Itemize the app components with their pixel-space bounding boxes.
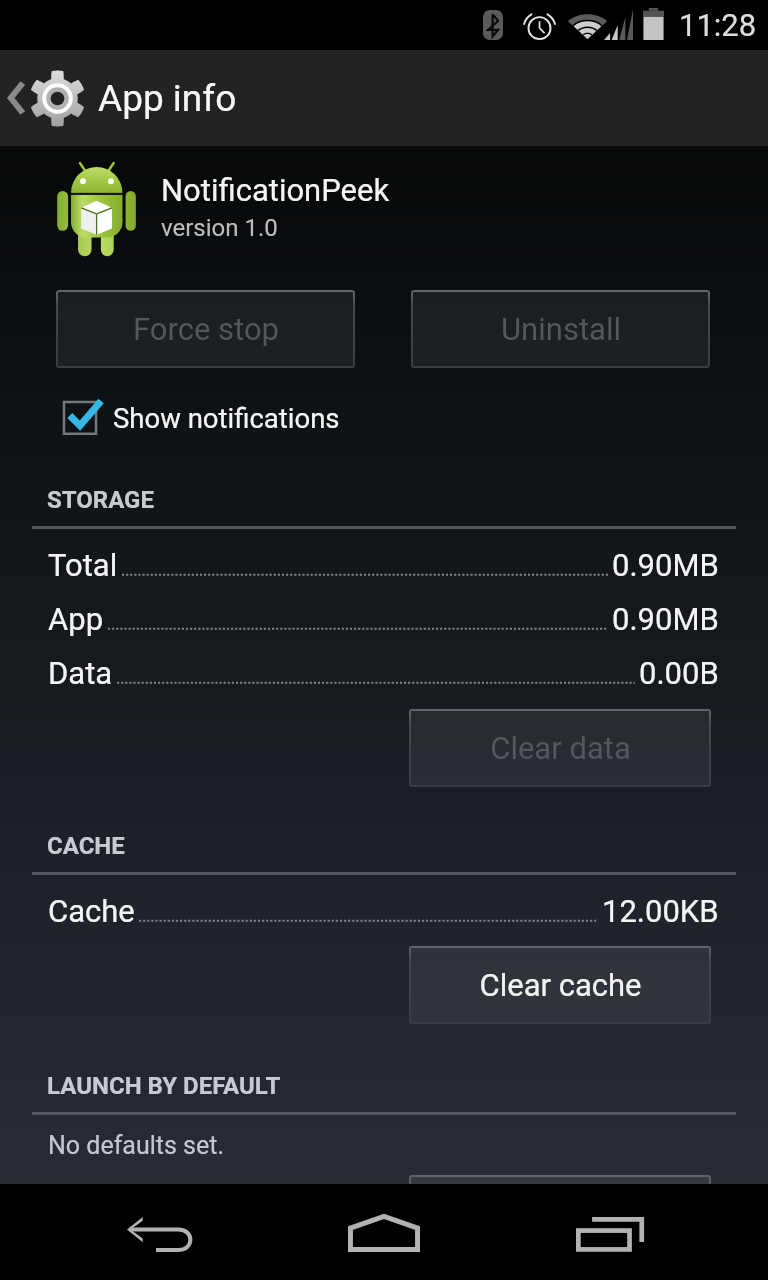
staticText: 0.00B <box>639 655 719 691</box>
staticText: No defaults set. <box>48 1131 225 1160</box>
button[interactable] <box>409 1175 711 1253</box>
button[interactable]: Force stop <box>56 290 355 368</box>
staticText: App info <box>98 77 237 120</box>
staticText: version 1.0 <box>161 214 278 242</box>
button[interactable]: App <box>0 592 768 646</box>
button[interactable]: Data <box>0 646 768 700</box>
staticText: Data <box>48 655 113 691</box>
button[interactable]: Uninstall <box>411 290 710 368</box>
staticText: CACHE <box>47 832 125 860</box>
staticText: Cache <box>48 893 135 929</box>
staticText: Clear data <box>490 730 631 766</box>
staticText: STORAGE <box>47 486 154 514</box>
button[interactable]: Clear data <box>409 709 711 787</box>
button[interactable]: App info, navigate up <box>0 50 768 146</box>
staticText: Force stop <box>133 311 279 347</box>
staticText: App <box>48 601 104 637</box>
button[interactable]: Back <box>48 1184 272 1280</box>
button[interactable]: Cache <box>0 884 768 938</box>
button[interactable]: Recent apps <box>496 1184 720 1280</box>
staticText: 0.90MB <box>612 547 719 583</box>
staticText: 11:28 <box>679 7 757 43</box>
staticText: Clear cache <box>479 967 642 1003</box>
button[interactable]: Clear cache <box>409 946 711 1024</box>
staticText: LAUNCH BY DEFAULT <box>47 1072 281 1100</box>
button[interactable]: Total <box>0 538 768 592</box>
button[interactable]: Home <box>272 1184 496 1280</box>
staticText: Show notifications <box>113 402 340 434</box>
staticText: 0.90MB <box>612 601 719 637</box>
staticText: NotificationPeek <box>161 172 390 208</box>
button[interactable]: Show notifications <box>62 392 340 444</box>
staticText: Total <box>48 547 118 583</box>
staticText: 12.00KB <box>602 893 719 929</box>
staticText: Uninstall <box>501 311 621 347</box>
